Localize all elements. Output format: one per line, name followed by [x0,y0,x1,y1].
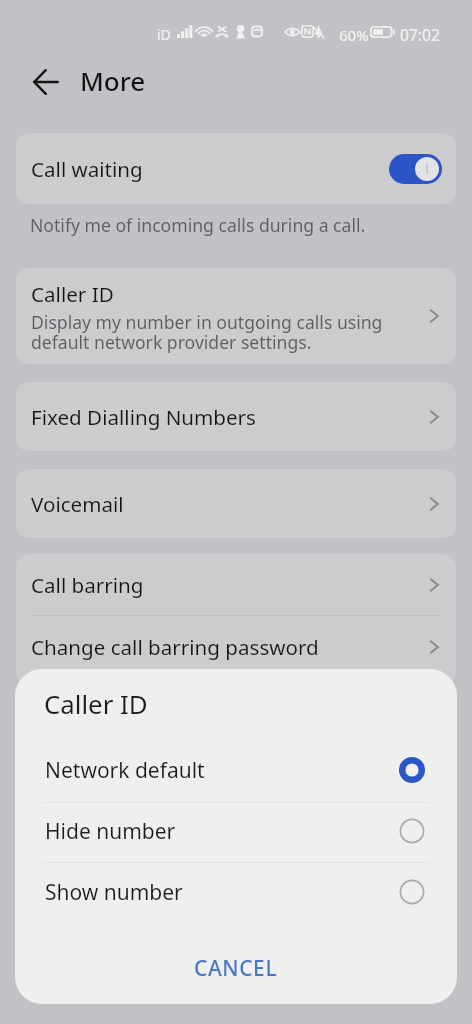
staticText: Show number [45,878,183,907]
staticText: Display my number in outgoing calls usin… [31,310,422,355]
button[interactable]: Fixed Dialling Numbers [16,382,456,451]
staticText: CANCEL [194,954,278,983]
button[interactable]: Call barring [16,554,456,615]
staticText: Change call barring password [31,633,319,661]
staticText: iD [157,25,171,44]
button[interactable]: Network default [15,740,457,800]
staticText: Caller ID [44,686,148,721]
button[interactable]: Caller ID [16,268,456,364]
staticText: Call waiting [31,155,143,183]
button[interactable]: CANCEL [15,923,457,1004]
staticText: Caller ID [31,280,114,308]
staticText: More [80,63,146,98]
staticText: 07:02 [400,24,440,45]
staticText: Fixed Dialling Numbers [31,403,256,431]
staticText: Call barring [31,571,144,599]
staticText: Voicemail [31,490,124,518]
button[interactable]: Hide number [15,801,457,861]
button[interactable]: Change call barring password [16,616,456,677]
staticText: Notify me of incoming calls during a cal… [30,213,366,237]
button[interactable]: Back [24,60,68,104]
staticText: Hide number [45,817,176,846]
button[interactable]: Show number [15,862,457,922]
staticText: Network default [45,756,205,785]
staticText: 60% [339,25,369,45]
button[interactable]: Voicemail [16,469,456,538]
button[interactable]: Call waiting [16,133,456,204]
button[interactable]: Call waiting toggle [389,154,442,184]
